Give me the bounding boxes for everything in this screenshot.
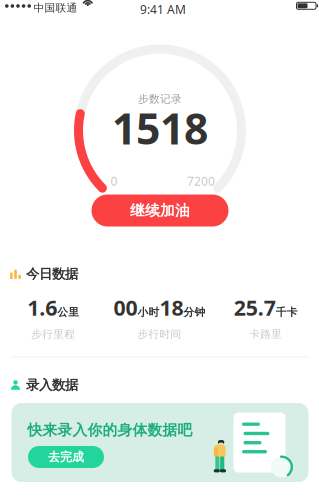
staticText: 去完成	[48, 450, 84, 464]
staticText: 1518	[112, 100, 208, 156]
staticText: 25.7	[234, 293, 276, 322]
staticText: 继续加油	[130, 201, 190, 219]
staticText: 步行时间	[137, 328, 181, 341]
staticText: 千卡	[276, 306, 298, 319]
staticText: 录入数据	[26, 377, 78, 393]
staticText: 7200	[187, 173, 215, 189]
staticText: 中国联通	[33, 1, 77, 15]
staticText: 步行里程	[31, 328, 75, 341]
staticText: 卡路里	[249, 328, 282, 341]
staticText: 公里	[57, 306, 79, 319]
button[interactable]: 去完成	[28, 446, 104, 468]
staticText: 今日数据	[26, 266, 78, 282]
staticText: 1.6	[27, 293, 57, 322]
staticText: 小时	[137, 306, 159, 319]
staticText: 分钟	[183, 306, 205, 319]
staticText: 0	[110, 173, 117, 189]
staticText: 9:41 AM	[140, 1, 186, 17]
staticText: 步数记录	[138, 92, 182, 105]
button[interactable]: 继续加油	[91, 194, 228, 226]
staticText: 00	[113, 293, 137, 322]
staticText: 快来录入你的身体数据吧	[27, 421, 192, 439]
staticText: 18	[159, 293, 183, 322]
